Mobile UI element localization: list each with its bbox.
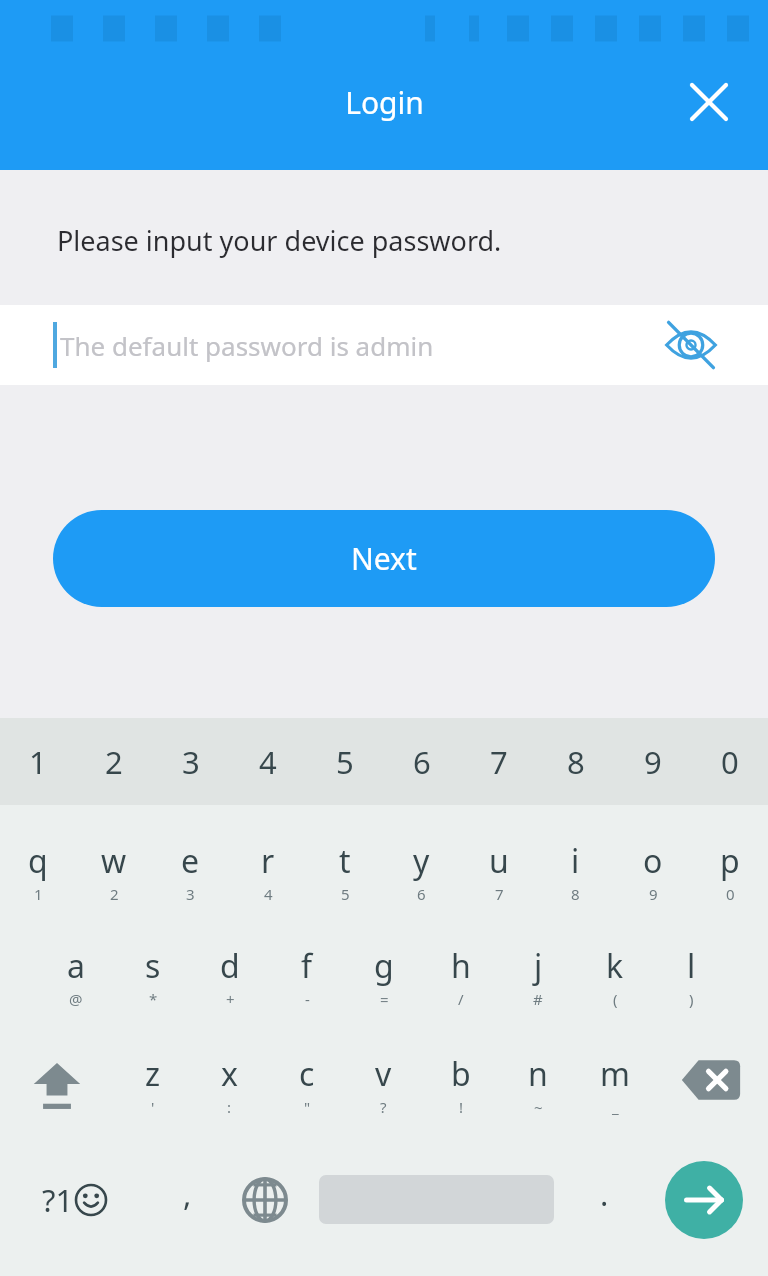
staticText: @: [69, 989, 83, 1009]
button[interactable]: 5: [306, 718, 383, 805]
staticText: f: [301, 944, 313, 988]
button[interactable]: 7: [460, 718, 537, 805]
button[interactable]: 2: [76, 718, 152, 805]
button[interactable]: p: [691, 819, 768, 924]
button[interactable]: j: [499, 924, 576, 1029]
staticText: Login: [345, 82, 424, 123]
button[interactable]: e: [152, 819, 229, 924]
staticText: i: [571, 839, 580, 883]
staticText: 2: [105, 741, 123, 783]
staticText: r: [261, 839, 275, 883]
button[interactable]: h: [422, 924, 499, 1029]
staticText: ): [689, 989, 694, 1009]
staticText: .: [600, 1173, 609, 1215]
staticText: 1: [29, 741, 47, 783]
button[interactable]: o: [614, 819, 691, 924]
staticText: ?1: [42, 1179, 74, 1221]
button[interactable]: 8: [537, 718, 614, 805]
button[interactable]: 0: [691, 718, 768, 805]
button[interactable]: .: [568, 1139, 640, 1260]
staticText: m: [600, 1052, 630, 1096]
staticText: (: [613, 989, 618, 1009]
staticText: c: [299, 1052, 315, 1096]
staticText: 0: [726, 884, 735, 904]
staticText: 4: [259, 741, 277, 783]
button[interactable]: 4: [229, 718, 306, 805]
button[interactable]: c: [268, 1029, 345, 1139]
staticText: Next: [351, 538, 417, 579]
staticText: #: [533, 989, 543, 1009]
button[interactable]: ,: [150, 1139, 225, 1260]
button[interactable]: f: [268, 924, 345, 1029]
button[interactable]: i: [537, 819, 614, 924]
button[interactable]: Change keyboard language: [225, 1139, 305, 1260]
button[interactable]: b: [422, 1029, 499, 1139]
button[interactable]: w: [76, 819, 152, 924]
button[interactable]: 1: [0, 718, 76, 805]
button[interactable]: l: [653, 924, 730, 1029]
staticText: k: [606, 944, 624, 988]
staticText: 0: [721, 741, 739, 783]
staticText: 6: [413, 741, 431, 783]
button[interactable]: g: [345, 924, 422, 1029]
staticText: +: [226, 989, 235, 1009]
button[interactable]: Show password: [662, 316, 720, 374]
staticText: 6: [417, 884, 426, 904]
staticText: q: [28, 839, 48, 883]
staticText: j: [534, 944, 543, 988]
button[interactable]: 3: [152, 718, 229, 805]
button[interactable]: k: [576, 924, 653, 1029]
staticText: h: [451, 944, 471, 988]
staticText: 7: [490, 741, 508, 783]
staticText: 3: [186, 884, 195, 904]
button[interactable]: t: [306, 819, 383, 924]
staticText: w: [101, 839, 127, 883]
button[interactable]: Close: [671, 64, 747, 140]
staticText: 8: [567, 741, 585, 783]
staticText: !: [459, 1097, 464, 1117]
button[interactable]: d: [191, 924, 268, 1029]
button[interactable]: Enter: [640, 1139, 768, 1260]
staticText: 4: [264, 884, 273, 904]
staticText: o: [643, 839, 663, 883]
staticText: g: [374, 944, 394, 988]
button[interactable]: s: [114, 924, 191, 1029]
button[interactable]: n: [499, 1029, 576, 1139]
button[interactable]: z: [114, 1029, 191, 1139]
button[interactable]: Next: [53, 510, 715, 607]
staticText: 3: [182, 741, 200, 783]
staticText: 5: [341, 884, 350, 904]
button[interactable]: 6: [383, 718, 460, 805]
staticText: t: [339, 839, 351, 883]
button[interactable]: 9: [614, 718, 691, 805]
button[interactable]: x: [191, 1029, 268, 1139]
button[interactable]: ?1: [0, 1139, 150, 1260]
staticText: 2: [110, 884, 119, 904]
staticText: *: [149, 989, 158, 1009]
staticText: Please input your device password.: [57, 222, 502, 259]
button[interactable]: v: [345, 1029, 422, 1139]
button[interactable]: r: [229, 819, 306, 924]
staticText: d: [220, 944, 240, 988]
button[interactable]: u: [460, 819, 537, 924]
staticText: x: [221, 1052, 238, 1096]
staticText: 1: [34, 884, 43, 904]
button[interactable]: The default password is admin: [0, 305, 768, 385]
button[interactable]: Backspace: [653, 1029, 768, 1139]
button[interactable]: q: [0, 819, 76, 924]
staticText: ?: [380, 1097, 387, 1117]
button[interactable]: y: [383, 819, 460, 924]
button[interactable]: m: [576, 1029, 653, 1139]
button[interactable]: a: [38, 924, 114, 1029]
staticText: a: [67, 944, 85, 988]
staticText: 7: [495, 884, 504, 904]
staticText: 9: [649, 884, 658, 904]
staticText: -: [305, 989, 310, 1009]
staticText: 8: [571, 884, 580, 904]
button[interactable]: Shift: [0, 1029, 114, 1139]
staticText: 9: [644, 741, 662, 783]
staticText: n: [528, 1052, 548, 1096]
staticText: 5: [336, 741, 354, 783]
staticText: ': [151, 1097, 155, 1117]
